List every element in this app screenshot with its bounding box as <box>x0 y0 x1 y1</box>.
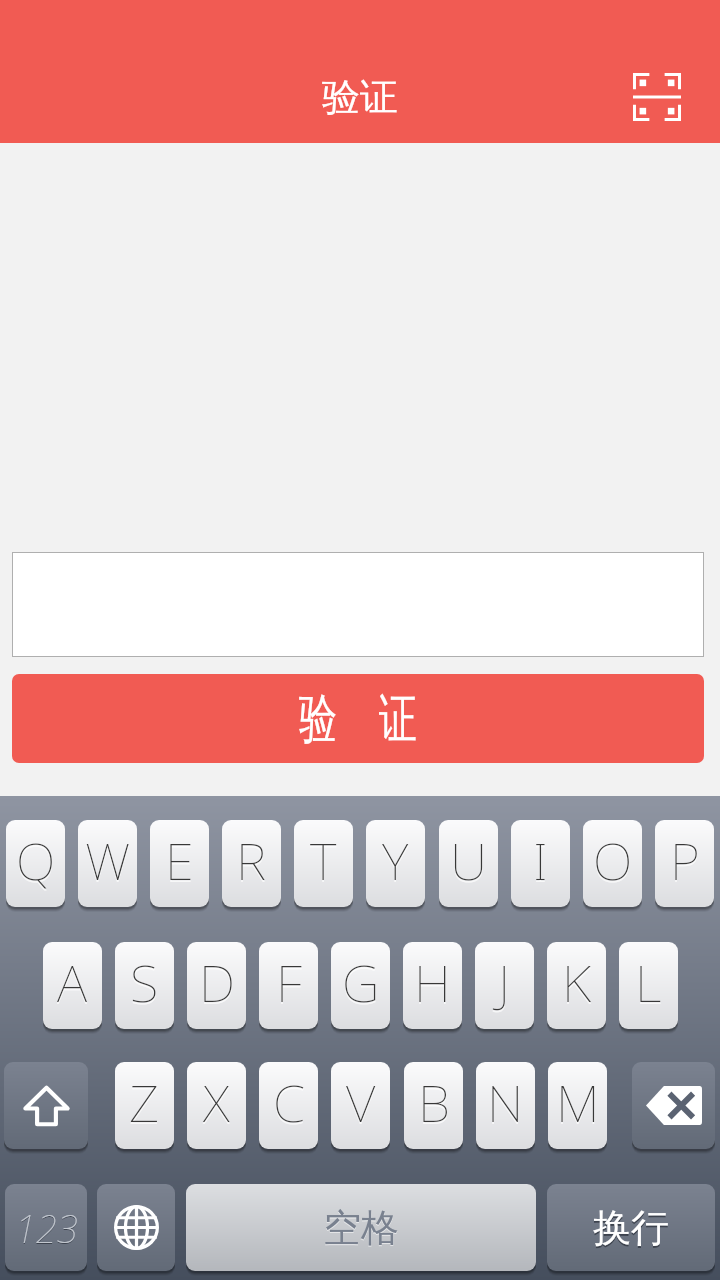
staticText: Y <box>382 829 409 896</box>
staticText: L <box>635 949 662 1016</box>
staticText: 换行 <box>593 1206 669 1254</box>
staticText: S <box>130 949 159 1016</box>
staticText: O <box>593 827 633 894</box>
staticText: A <box>57 949 88 1016</box>
staticText: 换行 <box>593 1204 669 1252</box>
button[interactable]: R <box>222 820 281 907</box>
staticText: 123 <box>15 1203 78 1255</box>
staticText: K <box>562 951 592 1018</box>
button[interactable]: 验 <box>12 674 704 763</box>
button[interactable]: X <box>187 1062 246 1149</box>
staticText: C <box>273 1071 305 1138</box>
button[interactable]: L <box>619 942 678 1029</box>
staticText: D <box>199 951 235 1018</box>
staticText: Y <box>382 827 409 894</box>
staticText: A <box>57 951 88 1018</box>
staticText: D <box>199 949 235 1016</box>
staticText: R <box>236 829 267 896</box>
staticText: J <box>498 951 511 1018</box>
button[interactable]: O <box>583 820 642 907</box>
button[interactable]: Shift <box>4 1062 88 1149</box>
button[interactable] <box>12 552 704 657</box>
button[interactable]: D <box>187 942 246 1029</box>
staticText: C <box>273 1069 305 1136</box>
button[interactable]: A <box>43 942 102 1029</box>
button[interactable]: U <box>439 820 498 907</box>
button[interactable]: S <box>115 942 174 1029</box>
staticText: G <box>342 951 380 1018</box>
staticText: W <box>85 829 131 896</box>
staticText: K <box>562 949 592 1016</box>
staticText: I <box>533 829 548 896</box>
staticText: N <box>487 1069 524 1136</box>
button[interactable]: N <box>476 1062 535 1149</box>
staticText: E <box>165 829 194 896</box>
staticText: E <box>165 827 194 894</box>
staticText: J <box>498 949 511 1016</box>
button[interactable]: T <box>294 820 353 907</box>
button[interactable]: B <box>404 1062 463 1149</box>
staticText: S <box>130 951 159 1018</box>
staticText: T <box>310 827 337 894</box>
button[interactable]: I <box>511 820 570 907</box>
staticText: 123 <box>15 1202 78 1254</box>
button[interactable]: H <box>403 942 462 1029</box>
staticText: 验证 <box>322 73 398 121</box>
staticText: 证 <box>379 685 417 753</box>
staticText: Z <box>129 1071 160 1138</box>
staticText: U <box>450 829 488 896</box>
staticText: Q <box>16 827 56 894</box>
button[interactable]: P <box>655 820 714 907</box>
staticText: W <box>85 827 131 894</box>
button[interactable]: Switch keyboard <box>97 1184 175 1271</box>
button[interactable]: M <box>548 1062 607 1149</box>
button[interactable]: Return <box>547 1184 715 1271</box>
button[interactable]: E <box>150 820 209 907</box>
staticText: M <box>556 1069 600 1136</box>
button[interactable]: J <box>475 942 534 1029</box>
staticText: B <box>418 1071 450 1138</box>
staticText: G <box>342 949 380 1016</box>
staticText: R <box>236 827 267 894</box>
staticText: X <box>203 1071 230 1138</box>
staticText: Q <box>16 829 56 896</box>
staticText: F <box>276 949 302 1016</box>
staticText: N <box>487 1071 524 1138</box>
staticText: B <box>418 1069 450 1136</box>
staticText: 空格 <box>323 1204 399 1252</box>
staticText: H <box>414 951 451 1018</box>
staticText: 空格 <box>323 1205 399 1253</box>
button[interactable]: Z <box>115 1062 174 1149</box>
button[interactable]: 空格 <box>186 1184 536 1271</box>
staticText: H <box>414 949 451 1016</box>
button[interactable]: V <box>331 1062 390 1149</box>
staticText: Z <box>129 1069 160 1136</box>
button[interactable]: K <box>547 942 606 1029</box>
button[interactable]: G <box>331 942 390 1029</box>
button[interactable]: Scan QR code <box>621 61 693 133</box>
staticText: X <box>203 1069 230 1136</box>
staticText: O <box>593 829 633 896</box>
button[interactable]: Q <box>6 820 65 907</box>
staticText: T <box>310 829 337 896</box>
staticText: P <box>670 827 700 894</box>
button[interactable]: C <box>259 1062 318 1149</box>
button[interactable]: W <box>78 820 137 907</box>
staticText: V <box>346 1069 376 1136</box>
button[interactable]: Numbers <box>5 1184 87 1271</box>
staticText: V <box>346 1071 376 1138</box>
staticText: U <box>450 827 488 894</box>
staticText: 验 <box>299 685 337 753</box>
button[interactable]: Backspace <box>632 1062 715 1149</box>
staticText: M <box>556 1071 600 1138</box>
button[interactable]: Y <box>366 820 425 907</box>
staticText: I <box>533 827 548 894</box>
staticText: F <box>276 951 302 1018</box>
staticText: P <box>670 829 700 896</box>
staticText: L <box>635 951 662 1018</box>
button[interactable]: F <box>259 942 318 1029</box>
